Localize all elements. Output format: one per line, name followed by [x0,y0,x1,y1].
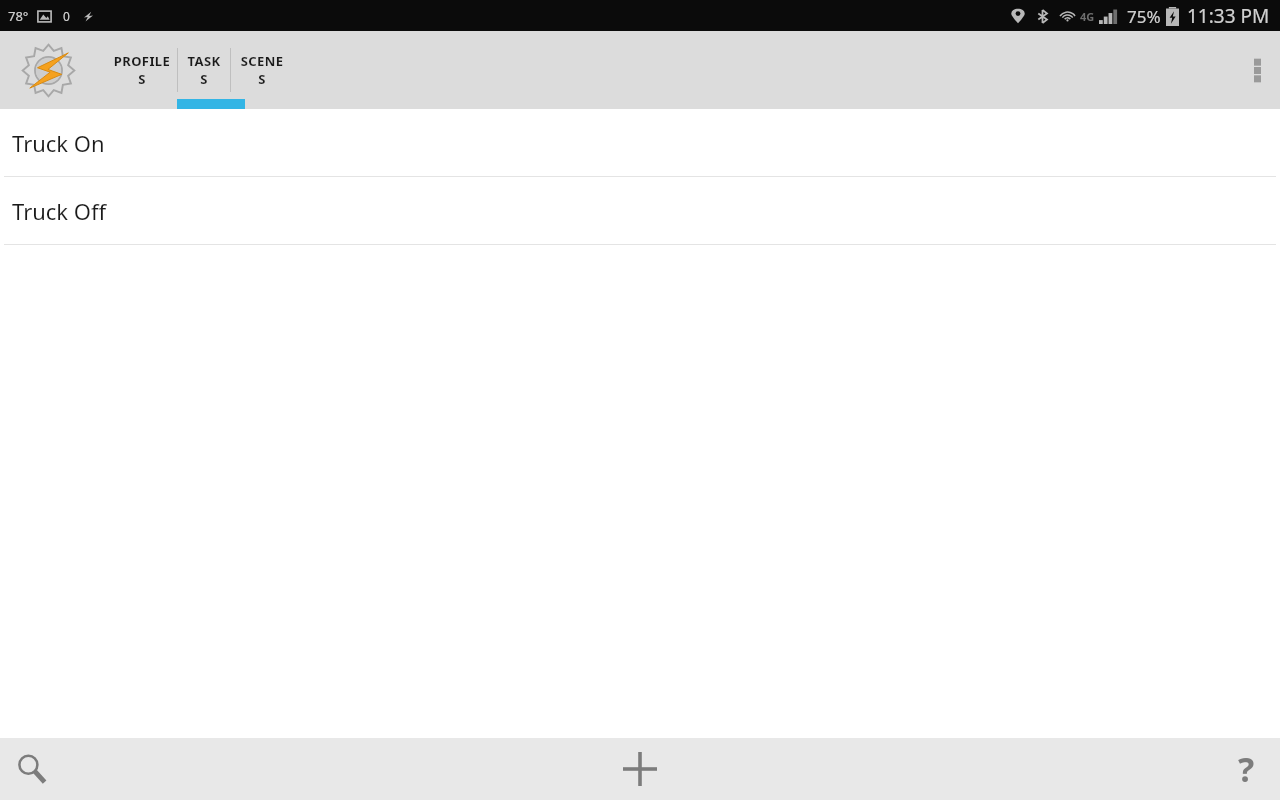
button[interactable]: SCENES [237,31,287,109]
button[interactable]: Truck On [0,109,1280,177]
staticText: Truck Off [12,196,107,226]
button[interactable]: Help [1222,745,1270,793]
button[interactable]: Truck Off [0,177,1280,245]
button[interactable]: PROFILES [113,31,171,109]
staticText: SCENES [237,52,287,88]
staticText: PROFILES [113,52,171,88]
staticText: 0 [63,8,70,24]
staticText: 75% [1127,5,1161,28]
button[interactable]: More options [1234,31,1280,109]
button[interactable]: Tasker [20,42,77,99]
staticText: ? [1238,746,1255,792]
button[interactable]: Search [8,745,56,793]
button[interactable]: TASKS [184,31,224,109]
staticText: 11:33 PM [1187,3,1270,29]
staticText: TASKS [184,52,224,88]
staticText: Truck On [12,128,105,158]
button[interactable]: Add [612,741,668,797]
staticText: 4G [1080,9,1095,24]
staticText: 78° [8,7,29,25]
